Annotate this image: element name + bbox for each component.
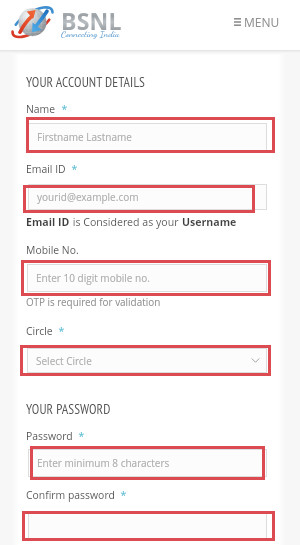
staticText: Email ID xyxy=(26,162,66,176)
staticText: OTP is required for validation xyxy=(26,295,161,308)
button[interactable]: Select Circle xyxy=(27,348,267,373)
staticText: YOUR PASSWORD xyxy=(26,400,111,418)
staticText: BSNL xyxy=(61,5,122,36)
button[interactable]: Firstname Lastname xyxy=(28,123,267,151)
staticText: Enter 10 digit mobile no. xyxy=(36,271,150,285)
staticText: is Considered as your xyxy=(70,215,182,229)
staticText: * xyxy=(73,429,85,443)
staticText: * xyxy=(56,102,68,116)
staticText: Connecting India xyxy=(61,28,120,39)
button[interactable] xyxy=(28,513,267,539)
staticText: * xyxy=(115,488,127,502)
staticText: Password xyxy=(26,429,73,443)
staticText: Email ID xyxy=(26,215,70,229)
staticText: * xyxy=(66,162,78,176)
staticText: Enter minimum 8 characters xyxy=(37,456,170,470)
staticText: Select Circle xyxy=(36,354,92,368)
staticText: * xyxy=(53,324,65,338)
button[interactable]: Enter 10 digit mobile no. xyxy=(27,264,267,292)
staticText: Name xyxy=(26,102,56,116)
staticText: MENU xyxy=(244,14,280,30)
staticText: Username xyxy=(182,215,237,229)
staticText: Confirm password xyxy=(26,488,115,502)
staticText: Firstname Lastname xyxy=(37,130,132,144)
staticText: Mobile No. xyxy=(26,243,79,257)
button[interactable]: Enter minimum 8 characters xyxy=(28,449,267,477)
button[interactable]: yourid@example.com xyxy=(28,184,267,210)
staticText: YOUR ACCOUNT DETAILS xyxy=(26,73,146,91)
staticText: Circle xyxy=(26,324,53,338)
button[interactable]: Open navigation menu xyxy=(231,11,283,33)
staticText: yourid@example.com xyxy=(37,190,139,204)
